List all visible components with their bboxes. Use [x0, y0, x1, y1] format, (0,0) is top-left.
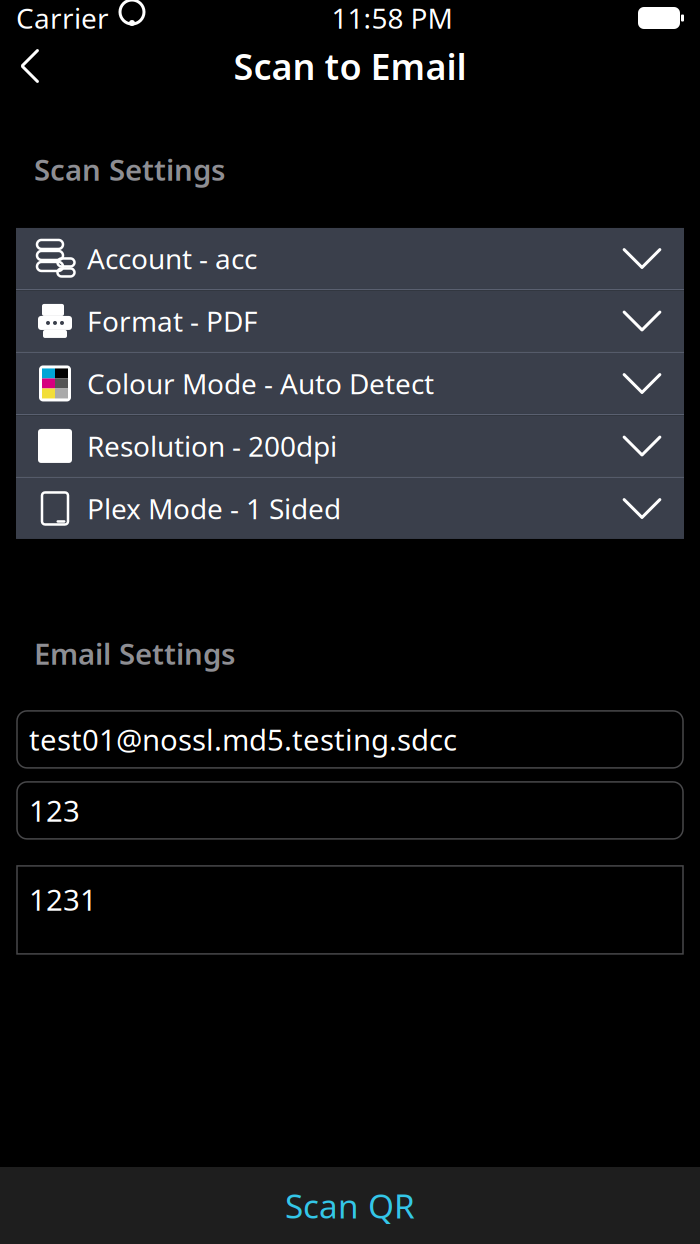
staticText: test01@nossl.md5.testing.sdcc	[29, 720, 457, 759]
button[interactable]: test01@nossl.md5.testing.sdcc	[17, 711, 683, 768]
staticText: Carrier	[16, 0, 109, 37]
staticText: Format - PDF	[87, 302, 258, 340]
staticText: Plex Mode - 1 Sided	[87, 490, 341, 527]
button[interactable]: 1231	[17, 866, 683, 954]
button[interactable]: Account - acc	[16, 228, 684, 289]
staticText: Account - acc	[87, 240, 257, 277]
button[interactable]: Scan QR	[0, 1167, 700, 1244]
button[interactable]: Colour Mode - Auto Detect	[16, 353, 684, 414]
staticText: Scan QR	[285, 1183, 415, 1228]
staticText: 123	[29, 791, 80, 830]
staticText: Scan Settings	[34, 150, 225, 189]
button[interactable]: 123	[17, 782, 683, 839]
staticText: Scan to Email	[233, 42, 466, 90]
button[interactable]: Back	[0, 39, 60, 93]
staticText: Colour Mode - Auto Detect	[87, 365, 434, 402]
button[interactable]: Format - PDF	[16, 290, 684, 351]
staticText: Resolution - 200dpi	[87, 427, 337, 465]
staticText: Email Settings	[34, 634, 235, 673]
button[interactable]: Resolution - 200dpi	[16, 415, 684, 476]
button[interactable]: Plex Mode - 1 Sided	[16, 478, 684, 539]
staticText: 11:58 PM	[331, 0, 452, 37]
staticText: 1231	[29, 880, 97, 919]
